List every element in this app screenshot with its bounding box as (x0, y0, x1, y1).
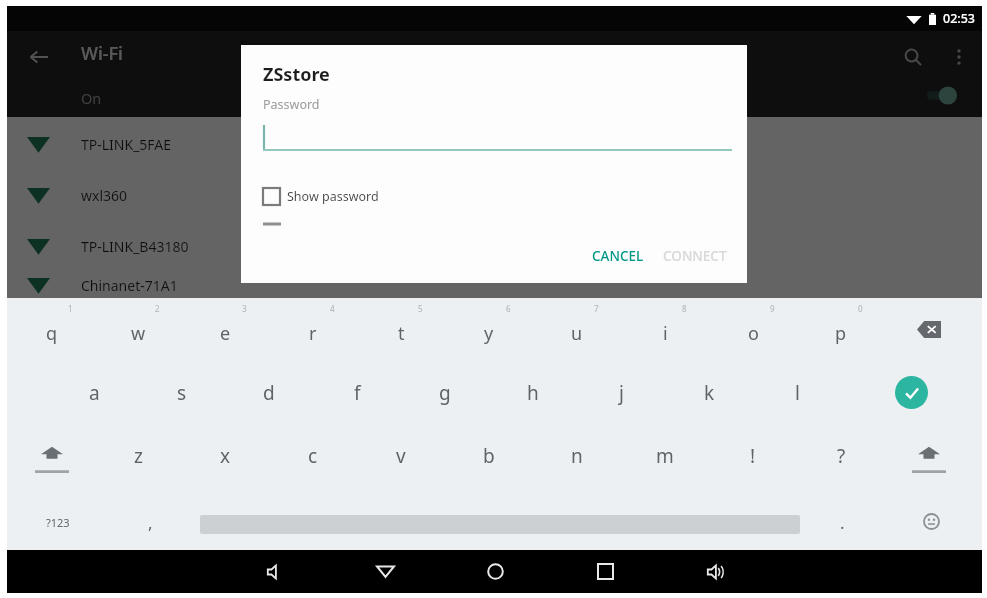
button[interactable]: Volume up (660, 550, 770, 593)
button[interactable]: TP-LINK_5FAE (7, 119, 982, 170)
button[interactable]: h (489, 361, 577, 424)
button[interactable]: a (51, 361, 138, 424)
button[interactable]: ?123 (8, 487, 107, 550)
button[interactable]: Emoji (890, 487, 973, 550)
button[interactable]: s (138, 361, 225, 424)
button[interactable]: 8 (621, 298, 709, 361)
button[interactable]: Shift (885, 424, 973, 487)
staticText: q (46, 321, 58, 346)
button[interactable]: c (269, 424, 357, 487)
staticText: Show password (287, 188, 379, 205)
button[interactable]: Search (889, 31, 937, 83)
staticText: k (704, 380, 715, 406)
button[interactable]: g (401, 361, 489, 424)
staticText: m (656, 443, 674, 469)
staticText: a (89, 380, 100, 406)
button[interactable]: Enter (841, 361, 973, 424)
button[interactable]: 1 (8, 298, 95, 361)
staticText: CANCEL (592, 247, 644, 265)
button[interactable]: 3 (182, 298, 269, 361)
button[interactable]: TP-LINK_B43180 (7, 221, 982, 272)
staticText: j (619, 380, 624, 406)
button[interactable]: Shift (8, 424, 95, 487)
button[interactable]: Backspace (885, 298, 973, 361)
button[interactable]: Space (194, 487, 794, 550)
staticText: 1 (68, 303, 73, 314)
staticText: ?123 (46, 515, 70, 530)
button[interactable]: b (445, 424, 533, 487)
button[interactable]: 0 (797, 298, 885, 361)
staticText: 5 (418, 303, 423, 314)
staticText: ZSstore (263, 62, 330, 87)
staticText: ? (837, 443, 846, 469)
staticText: r (309, 321, 317, 346)
staticText: wxl360 (81, 186, 128, 205)
button[interactable]: z (95, 424, 182, 487)
button[interactable]: m (621, 424, 709, 487)
button[interactable]: 2 (95, 298, 182, 361)
button[interactable]: 5 (357, 298, 445, 361)
staticText: ! (750, 443, 756, 469)
staticText: u (571, 321, 583, 346)
button[interactable]: More options (937, 31, 981, 83)
staticText: g (439, 380, 451, 406)
staticText: h (527, 380, 539, 406)
staticText: z (134, 443, 143, 469)
button[interactable]: wxl360 (7, 170, 982, 221)
button[interactable]: v (357, 424, 445, 487)
button[interactable]: CONNECT (656, 241, 734, 271)
button[interactable]: 7 (533, 298, 621, 361)
staticText: d (263, 380, 275, 406)
button[interactable]: Back (330, 550, 440, 593)
button[interactable]: . (794, 487, 890, 550)
button[interactable]: Wi-Fi toggle (927, 86, 957, 105)
button[interactable]: j (577, 361, 665, 424)
staticText: 6 (506, 303, 511, 314)
staticText: TP-LINK_5FAE (81, 135, 172, 154)
button[interactable]: ? (797, 424, 885, 487)
button[interactable]: CANCEL (585, 241, 651, 271)
button[interactable]: 9 (709, 298, 797, 361)
staticText: 0 (858, 303, 863, 314)
button[interactable]: l (753, 361, 841, 424)
button[interactable]: n (533, 424, 621, 487)
button[interactable]: x (182, 424, 269, 487)
staticText: v (396, 443, 406, 469)
staticText: 4 (330, 303, 335, 314)
staticText: y (484, 321, 494, 346)
staticText: e (220, 321, 231, 346)
staticText: f (354, 380, 361, 406)
button[interactable]: ! (709, 424, 797, 487)
staticText: On (81, 88, 102, 108)
button[interactable]: , (107, 487, 194, 550)
staticText: n (571, 443, 583, 469)
staticText: Wi-Fi (81, 41, 123, 66)
staticText: b (483, 443, 495, 469)
staticText: 8 (682, 303, 687, 314)
staticText: p (835, 321, 847, 346)
button[interactable]: Chinanet-71A1 (7, 272, 982, 298)
staticText: 3 (242, 303, 247, 314)
staticText: w (131, 321, 146, 346)
staticText: Password (263, 96, 320, 113)
staticText: 9 (770, 303, 775, 314)
staticText: t (398, 321, 405, 346)
staticText: x (220, 443, 231, 469)
button[interactable]: 6 (445, 298, 533, 361)
button[interactable]: f (313, 361, 401, 424)
button[interactable]: Show password (263, 188, 379, 205)
button[interactable]: 4 (269, 298, 357, 361)
button[interactable]: Volume down (220, 550, 330, 593)
staticText: 7 (594, 303, 599, 314)
staticText: o (748, 321, 759, 346)
button[interactable]: d (225, 361, 313, 424)
button[interactable]: Recents (550, 550, 660, 593)
staticText: s (177, 380, 187, 406)
staticText: , (148, 511, 153, 534)
button[interactable]: k (665, 361, 753, 424)
staticText: 2 (155, 303, 160, 314)
staticText: l (795, 380, 800, 406)
button[interactable]: Back (7, 31, 71, 83)
button[interactable]: Home (440, 550, 550, 593)
staticText: CONNECT (663, 247, 727, 265)
